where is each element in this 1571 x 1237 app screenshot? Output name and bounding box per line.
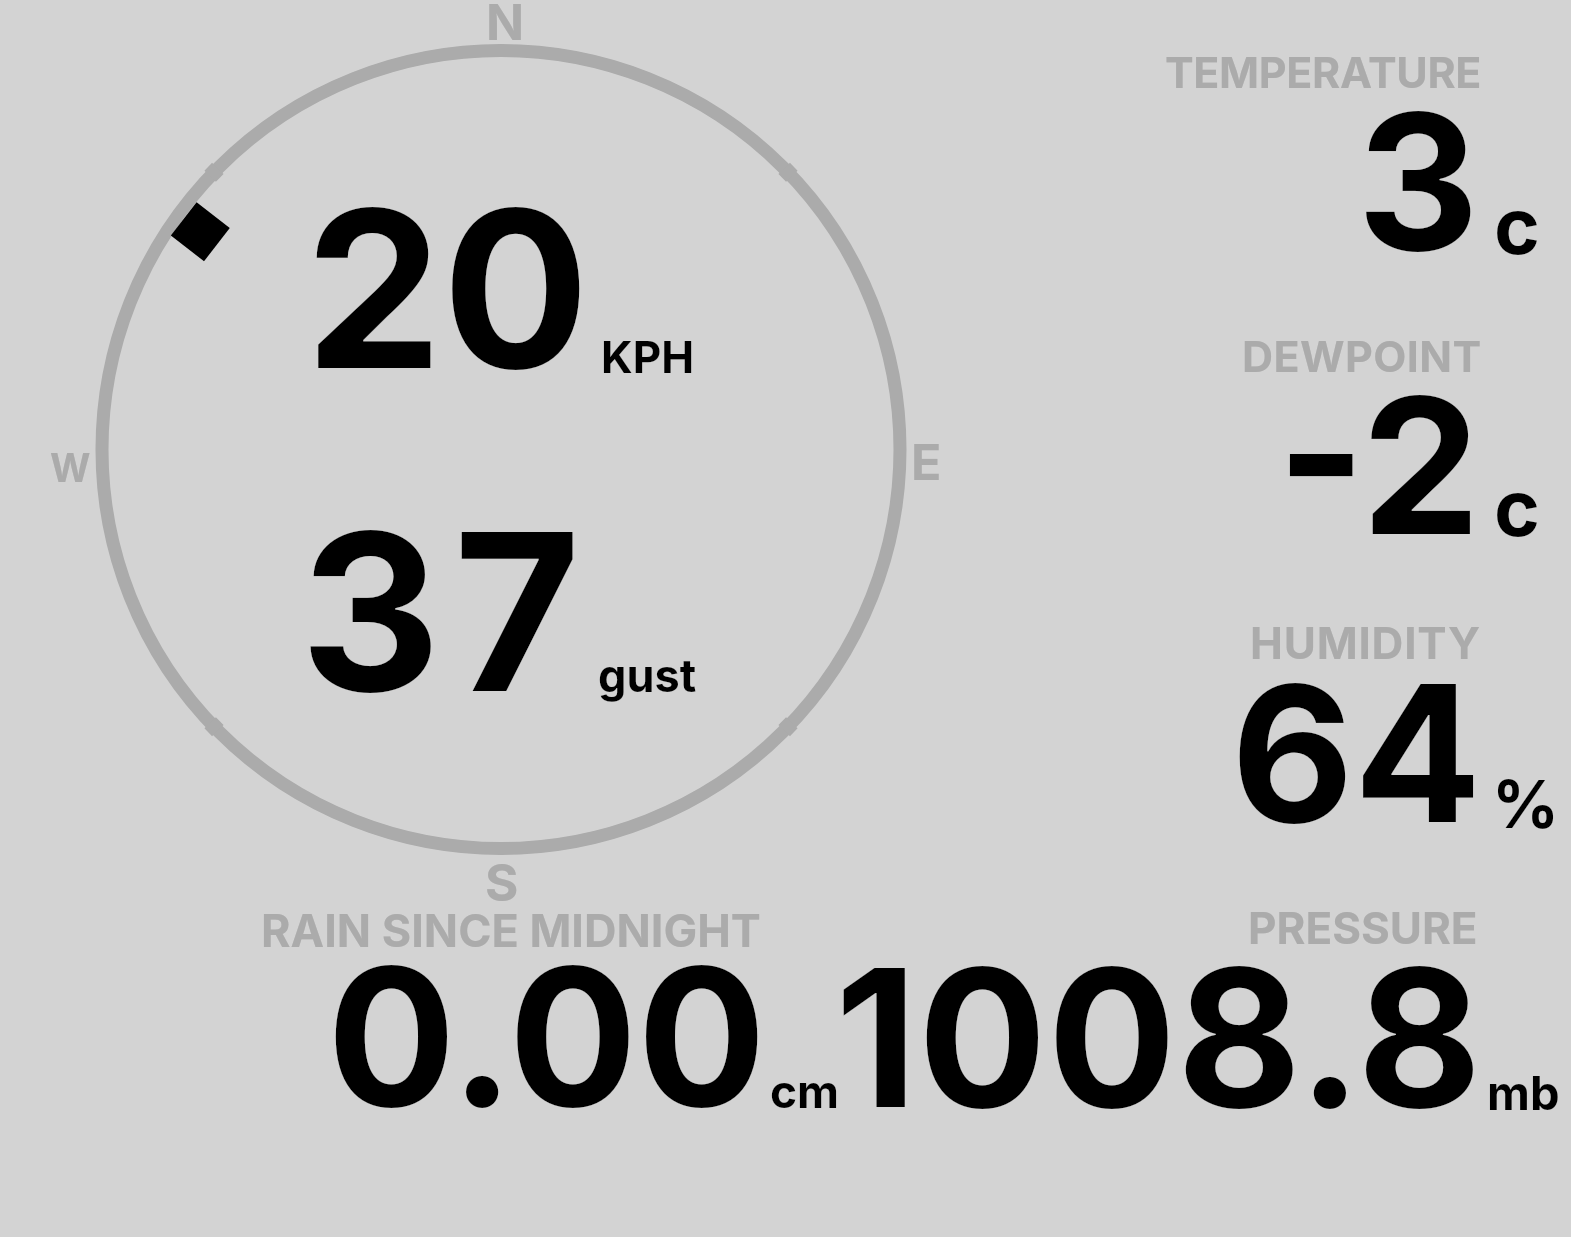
staticText: 64 — [1231, 639, 1482, 868]
staticText: KPH — [601, 330, 695, 383]
staticText: gust — [598, 648, 697, 702]
staticText: mb — [1487, 1064, 1560, 1121]
button[interactable]: Dewpoint minus 2 degrees Celsius — [1100, 320, 1571, 580]
button[interactable]: Wind 20 KPH gusting 37, north-westerly — [78, 20, 938, 880]
staticText: E — [911, 432, 942, 492]
staticText: 37 — [300, 480, 594, 744]
staticText: c — [1494, 460, 1540, 554]
button[interactable]: Humidity 64 percent — [1100, 605, 1571, 870]
staticText: S — [485, 852, 519, 914]
staticText: cm — [770, 1063, 840, 1119]
staticText: 20 — [305, 157, 590, 421]
staticText: RAIN SINCE MIDNIGHT — [261, 903, 761, 957]
button[interactable]: Rain since midnight 0.00 centimetres — [240, 890, 860, 1130]
staticText: -2 — [1277, 351, 1481, 580]
staticText: 0.00 — [327, 921, 766, 1152]
staticText: 1008.8 — [835, 922, 1483, 1153]
staticText: TEMPERATURE — [1165, 46, 1482, 98]
button[interactable]: Temperature 3 degrees Celsius — [1100, 30, 1571, 295]
button[interactable]: Pressure 1008.8 millibars — [870, 890, 1571, 1130]
staticText: DEWPOINT — [1242, 330, 1482, 382]
staticText: 3 — [1357, 67, 1480, 296]
staticText: N — [486, 0, 525, 52]
staticText: % — [1492, 764, 1560, 844]
staticText: PRESSURE — [1248, 901, 1478, 954]
staticText: W — [50, 444, 91, 491]
staticText: HUMIDITY — [1250, 616, 1481, 669]
staticText: c — [1494, 178, 1540, 272]
